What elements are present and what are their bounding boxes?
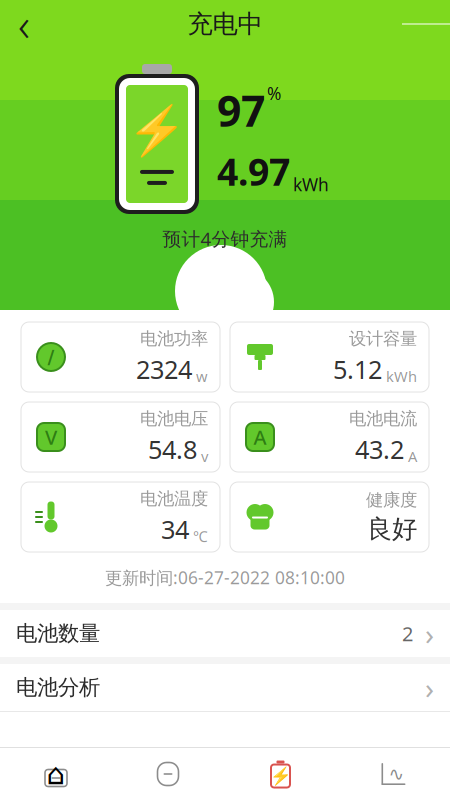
button[interactable]: 设备 — [112, 748, 224, 800]
staticText: ⚡ — [269, 766, 291, 786]
button[interactable]: 健康度 — [230, 482, 429, 552]
staticText: ⚡ — [127, 103, 187, 158]
staticText: ℃ — [193, 526, 208, 546]
staticText: A — [253, 424, 266, 450]
staticText: 良好 — [367, 514, 417, 545]
staticText: w — [196, 366, 208, 386]
staticText: 预计4分钟充满 — [162, 226, 287, 251]
button[interactable]: 电池分析 — [0, 664, 450, 711]
staticText: 电池分析 — [16, 674, 100, 701]
staticText: › — [425, 614, 434, 653]
button[interactable]: Back — [0, 2, 48, 46]
staticText: ∿ — [388, 763, 404, 785]
button[interactable]: 电池温度 — [21, 482, 220, 552]
staticText: 更新时间:06-27-2022 08:10:00 — [105, 566, 345, 589]
staticText: 健康度 — [366, 489, 417, 511]
staticText: 电池电流 — [349, 408, 417, 429]
staticText: 充电中 — [187, 8, 262, 39]
staticText: 电池功率 — [140, 328, 208, 349]
staticText: % — [267, 82, 281, 105]
button[interactable]: 统计 — [337, 748, 450, 800]
staticText: › — [425, 668, 434, 707]
staticText: ‹ — [18, 0, 30, 54]
staticText: kWh — [293, 173, 329, 196]
staticText: ⌂ — [46, 757, 65, 791]
staticText: 43.2 — [355, 432, 404, 466]
staticText: v — [201, 446, 208, 466]
button[interactable]: A — [230, 402, 429, 472]
staticText: 2324 — [136, 352, 192, 386]
staticText: 4.97 — [217, 146, 290, 196]
staticText: 54.8 — [148, 432, 197, 466]
staticText: 电池温度 — [140, 488, 208, 509]
button[interactable]: ∕ — [21, 322, 220, 392]
staticText: 设计容量 — [349, 328, 417, 349]
staticText: 97 — [217, 82, 265, 139]
button[interactable]: 首页 — [0, 748, 112, 800]
staticText: 电池电压 — [140, 408, 208, 429]
staticText: kWh — [386, 366, 417, 386]
button[interactable]: 电池数量 — [0, 610, 450, 657]
staticText: A — [408, 446, 417, 466]
staticText: 2 — [402, 620, 413, 647]
staticText: 34 — [161, 512, 189, 546]
button[interactable]: V — [21, 402, 220, 472]
staticText: ∕ — [47, 346, 54, 368]
staticText: V — [45, 424, 57, 450]
staticText: 电池数量 — [16, 620, 100, 647]
button[interactable]: 设计容量 — [230, 322, 429, 392]
button[interactable]: 电池 — [224, 748, 337, 800]
staticText: 5.12 — [333, 352, 382, 386]
